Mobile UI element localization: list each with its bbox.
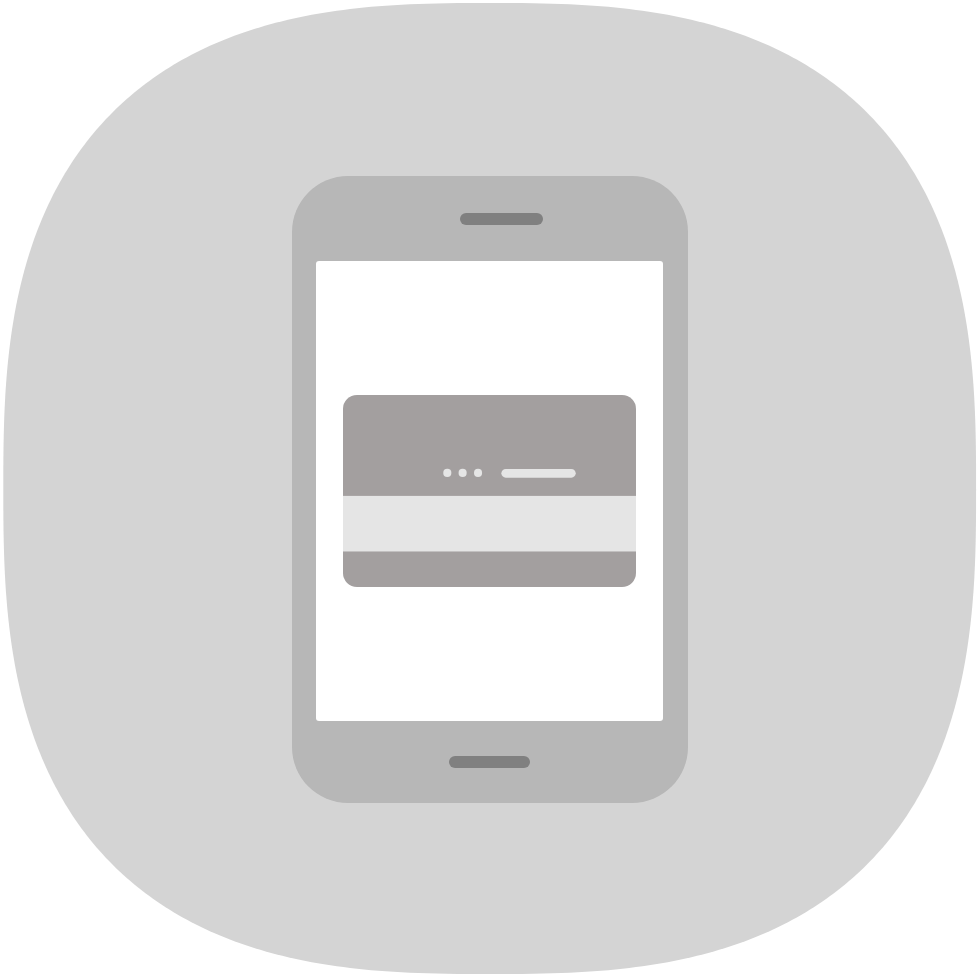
button[interactable]: Phone showing a payment card xyxy=(292,176,688,803)
button[interactable]: Home xyxy=(449,756,530,768)
button[interactable]: Saved payment card xyxy=(343,395,636,587)
